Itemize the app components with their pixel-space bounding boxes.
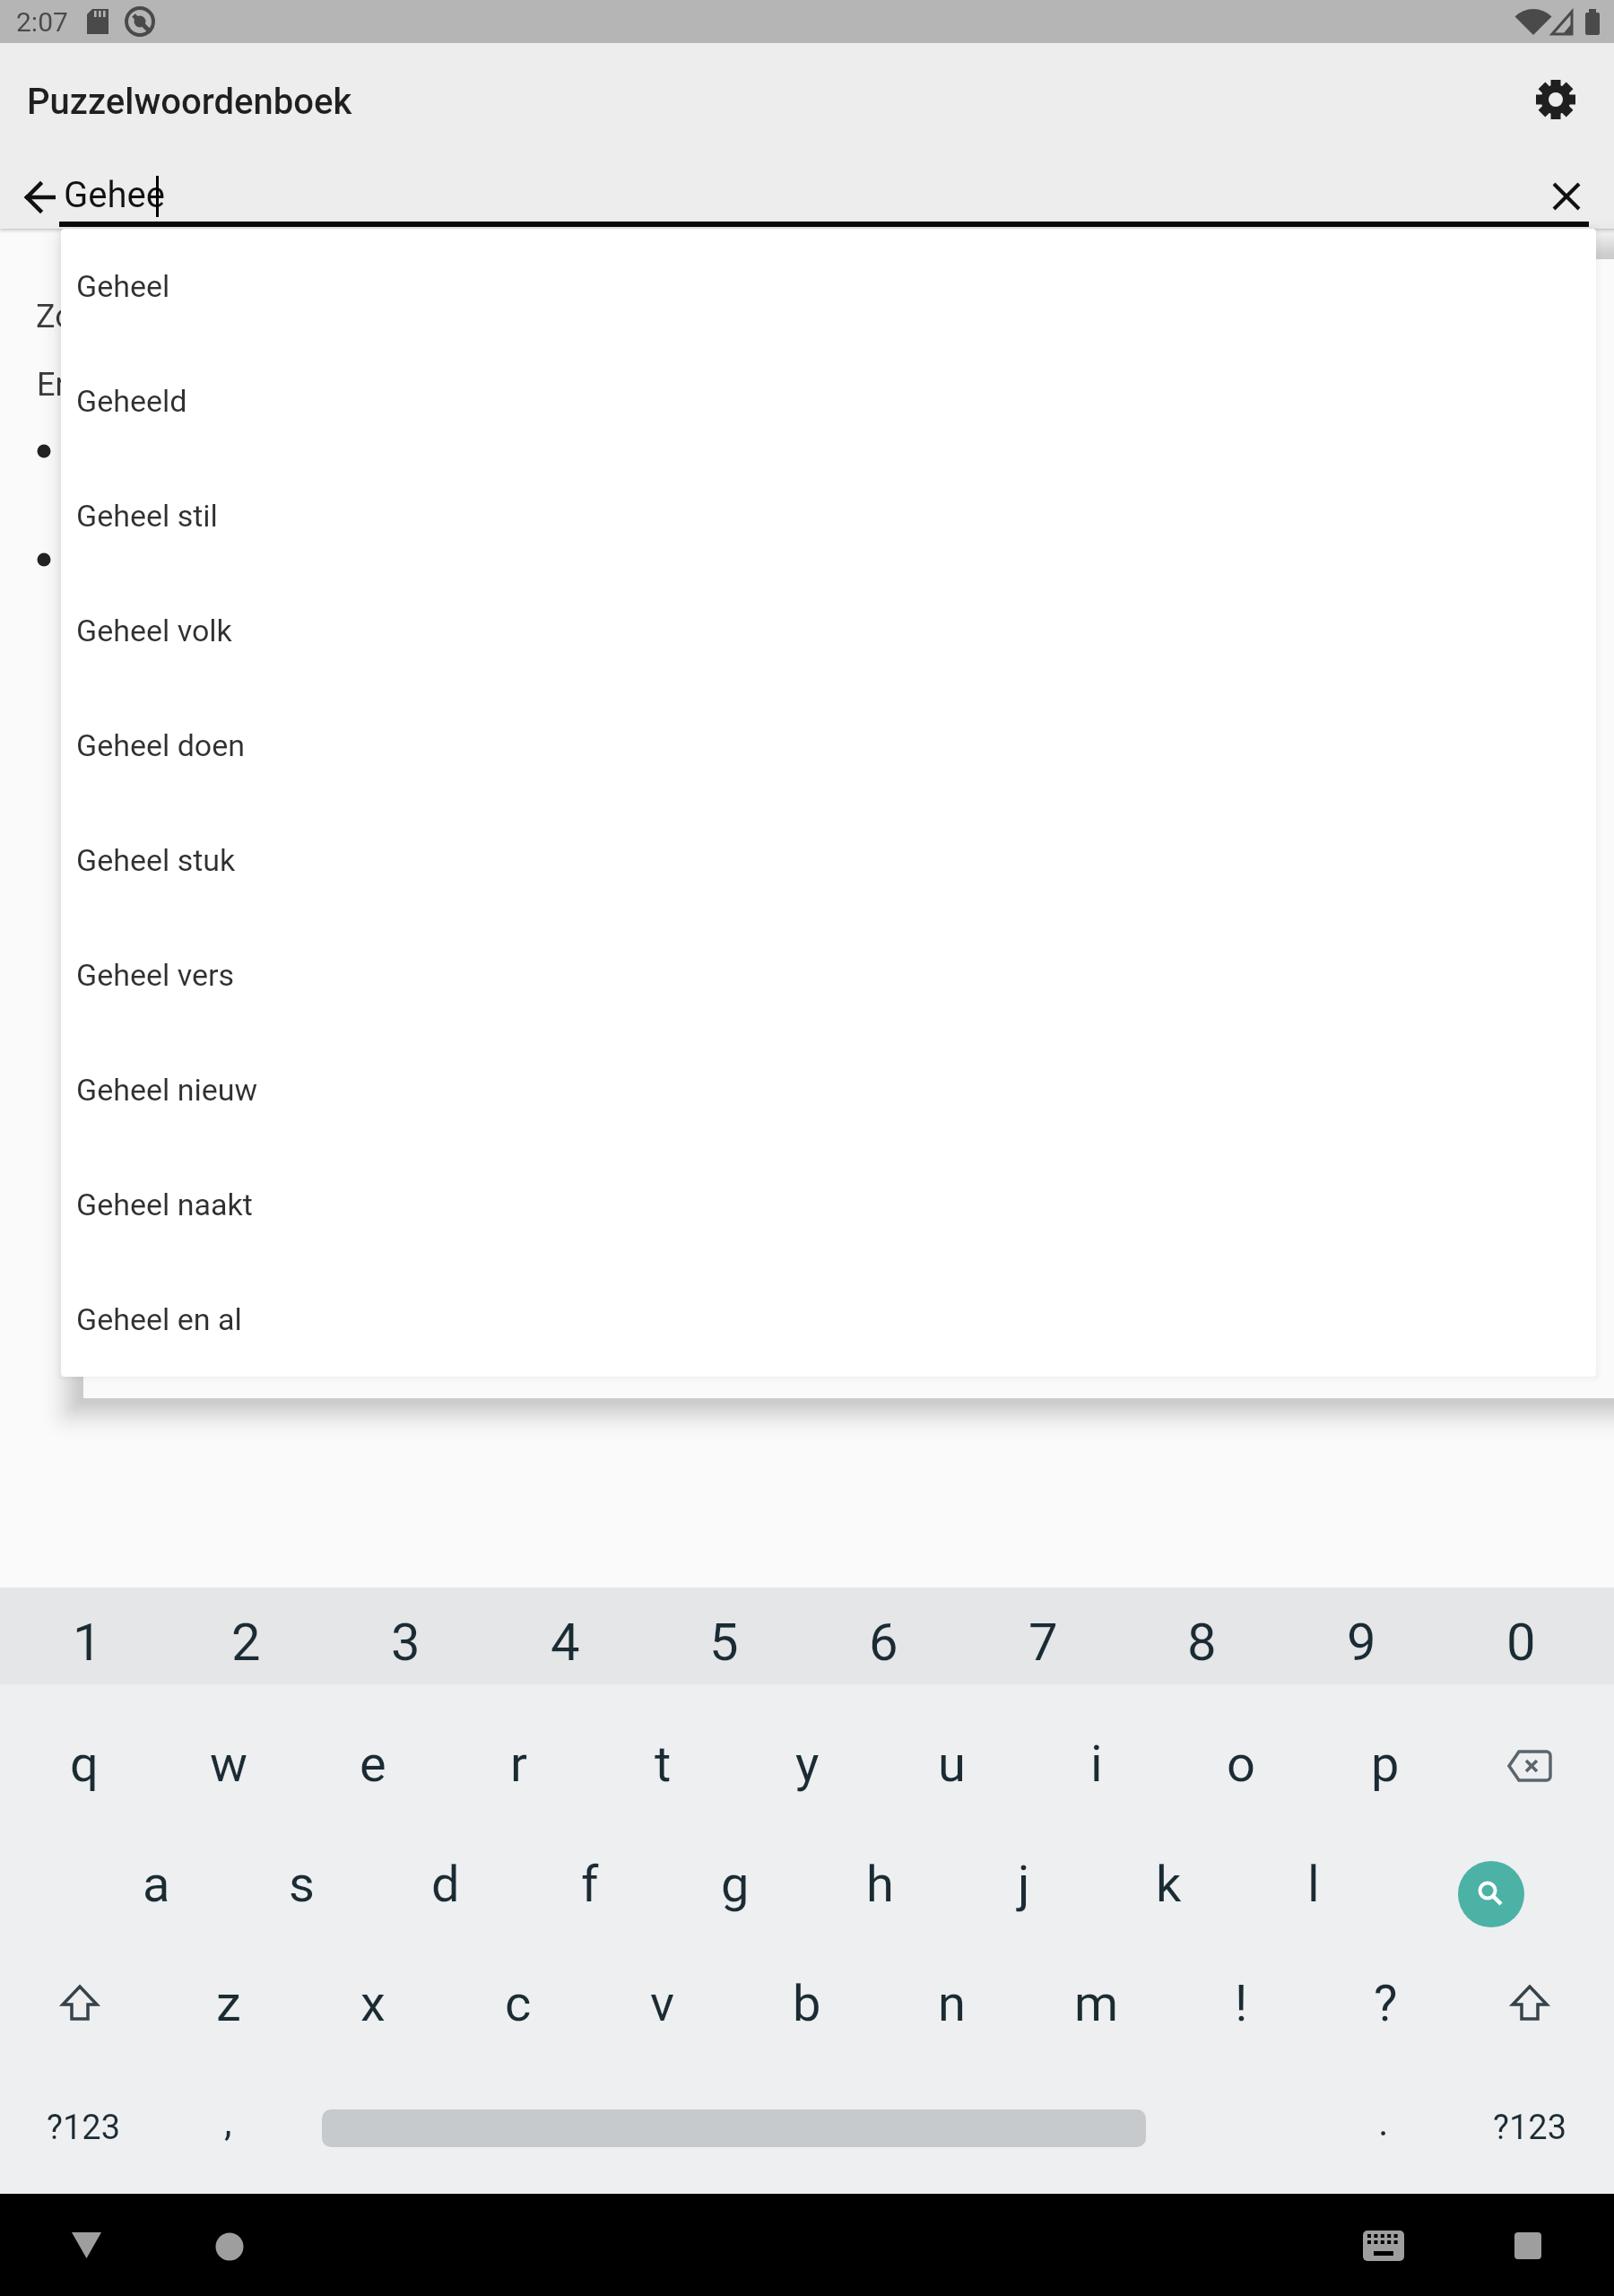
staticText: d (431, 1855, 460, 1914)
staticText: Geheel stil (76, 498, 218, 534)
button[interactable]: c (447, 1954, 590, 2053)
button[interactable]: x (301, 1954, 445, 2053)
button[interactable]: u (880, 1715, 1023, 1813)
staticText: m (1074, 1974, 1119, 2033)
staticText: ?123 (1493, 2108, 1567, 2148)
staticText: g (721, 1855, 750, 1914)
button[interactable]: m (1025, 1954, 1168, 2053)
staticText: ?123 (47, 2108, 121, 2148)
button[interactable]: v (591, 1954, 734, 2053)
staticText: s (289, 1855, 315, 1914)
staticText: 2 (231, 1612, 261, 1673)
button[interactable]: t (591, 1715, 734, 1813)
staticText: j (1018, 1855, 1030, 1914)
staticText: n (938, 1974, 966, 2033)
button[interactable]: Geheel nieuw (61, 1032, 1596, 1147)
button[interactable]: e (301, 1715, 445, 1813)
button[interactable]: Geheel vers (61, 918, 1596, 1032)
button[interactable]: 5 (645, 1596, 803, 1689)
button[interactable]: g (664, 1835, 807, 1934)
staticText: 0 (1506, 1612, 1536, 1673)
staticText: q (70, 1735, 99, 1794)
button[interactable]: l (1242, 1835, 1385, 1934)
button[interactable] (203, 2218, 256, 2272)
button[interactable]: 8 (1123, 1596, 1280, 1689)
staticText: e (360, 1735, 386, 1794)
button[interactable]: q (13, 1715, 156, 1813)
button[interactable] (1501, 2218, 1555, 2272)
button[interactable]: k (1097, 1835, 1240, 1934)
button[interactable]: r (447, 1715, 590, 1813)
button[interactable]: 4 (486, 1596, 644, 1689)
button[interactable]: n (880, 1954, 1023, 2053)
button[interactable]: d (374, 1835, 517, 1934)
button[interactable] (1544, 174, 1589, 219)
button[interactable]: , (156, 2073, 299, 2171)
button[interactable]: s (230, 1835, 373, 1934)
staticText: Geheel vers (76, 957, 235, 993)
staticText: i (1090, 1735, 1103, 1794)
button[interactable]: o (1169, 1715, 1313, 1813)
button[interactable]: ! (1169, 1954, 1313, 2053)
staticText: Zoeken (36, 298, 142, 335)
staticText: o (1227, 1735, 1255, 1794)
button[interactable]: Geheel stuk (61, 803, 1596, 918)
button[interactable]: f (518, 1835, 662, 1934)
button[interactable]: 7 (964, 1596, 1122, 1689)
button[interactable]: Geheel en al (61, 1262, 1596, 1377)
button[interactable]: b (735, 1954, 879, 2053)
button[interactable]: 3 (326, 1596, 484, 1689)
button[interactable] (1529, 73, 1583, 126)
button[interactable]: Geheel stil (61, 458, 1596, 573)
button[interactable]: 9 (1282, 1596, 1440, 1689)
button[interactable]: j (952, 1835, 1096, 1934)
staticText: 3 (391, 1612, 421, 1673)
staticText: , (224, 2099, 232, 2145)
button[interactable]: Geheel volk (61, 573, 1596, 688)
button[interactable]: y (735, 1715, 879, 1813)
button[interactable] (36, 1959, 126, 2048)
button[interactable]: z (157, 1954, 300, 2053)
staticText: a (143, 1855, 170, 1914)
staticText: 1 (73, 1612, 102, 1673)
staticText: Geheel en al (76, 1301, 242, 1337)
button[interactable]: ? (1314, 1954, 1457, 2053)
staticText: l (1307, 1855, 1320, 1914)
staticText: Geheel stuk (76, 842, 236, 878)
button[interactable]: h (808, 1835, 951, 1934)
button[interactable]: 0 (1442, 1596, 1600, 1689)
button[interactable]: Geheel naakt (61, 1147, 1596, 1262)
button[interactable]: ?123 (12, 2078, 155, 2177)
staticText: ! (1235, 1974, 1248, 2033)
button[interactable] (322, 2109, 1146, 2147)
button[interactable] (18, 175, 63, 220)
staticText: b (793, 1974, 821, 2033)
button[interactable]: 2 (167, 1596, 325, 1689)
button[interactable]: . (1312, 2073, 1455, 2171)
button[interactable] (1485, 1959, 1575, 2048)
staticText: 8 (1187, 1612, 1217, 1673)
button[interactable] (1457, 1860, 1525, 1928)
button[interactable] (1357, 2218, 1410, 2272)
button[interactable]: w (157, 1715, 300, 1813)
staticText: Geheel doen (76, 727, 246, 763)
button[interactable]: 1 (8, 1596, 166, 1689)
button[interactable]: a (84, 1835, 228, 1934)
button[interactable]: Geheeld (61, 344, 1596, 458)
button[interactable]: Geheel doen (61, 688, 1596, 803)
button[interactable]: 6 (804, 1596, 962, 1689)
staticText: k (1156, 1855, 1182, 1914)
staticText: v (650, 1974, 675, 2033)
staticText: 9 (1347, 1612, 1376, 1673)
staticText: h (866, 1855, 894, 1914)
button[interactable]: i (1025, 1715, 1168, 1813)
staticText: y (795, 1735, 820, 1794)
button[interactable] (59, 2218, 113, 2272)
button[interactable]: ?123 (1458, 2078, 1601, 2177)
staticText: c (505, 1974, 532, 2033)
staticText: Geheel (76, 268, 170, 304)
staticText: Geheeld (76, 383, 187, 419)
button[interactable] (1485, 1722, 1575, 1812)
button[interactable]: Geheel (61, 229, 1596, 344)
button[interactable]: p (1314, 1715, 1457, 1813)
